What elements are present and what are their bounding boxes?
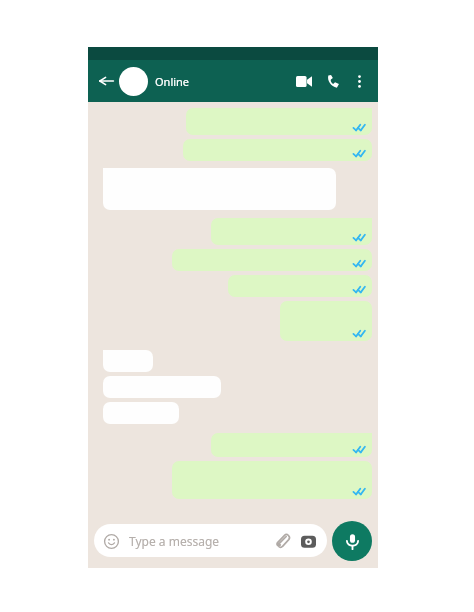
button[interactable]: Back xyxy=(97,72,115,90)
staticText: Type a message xyxy=(129,533,270,549)
button[interactable]: Emoji xyxy=(100,530,122,552)
button[interactable]: Record voice message xyxy=(332,521,372,561)
button[interactable]: Attach xyxy=(270,529,294,553)
button[interactable] xyxy=(183,139,372,161)
button[interactable]: Voice call xyxy=(320,68,346,94)
button[interactable] xyxy=(280,301,372,341)
button[interactable] xyxy=(103,376,221,398)
button[interactable] xyxy=(211,218,372,245)
button[interactable]: Video call xyxy=(291,68,317,94)
button[interactable]: More options xyxy=(347,69,371,93)
button[interactable] xyxy=(172,461,372,499)
button[interactable] xyxy=(211,433,372,457)
button[interactable] xyxy=(228,275,372,297)
button[interactable]: Contact photo xyxy=(119,67,148,96)
button[interactable] xyxy=(186,108,372,135)
button[interactable] xyxy=(103,402,179,424)
button[interactable]: Camera xyxy=(298,531,318,551)
staticText: Online xyxy=(155,74,190,89)
button[interactable] xyxy=(172,249,372,271)
button[interactable]: Emoji xyxy=(94,524,327,557)
button[interactable] xyxy=(103,350,153,372)
